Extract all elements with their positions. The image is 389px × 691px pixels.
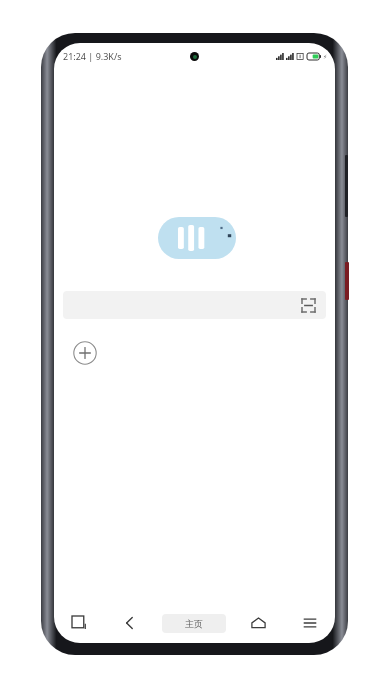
button[interactable]: Menu [284, 603, 335, 643]
button[interactable]: Add [73, 341, 97, 365]
staticText: 主页 [185, 618, 203, 629]
button[interactable]: Scan [299, 296, 317, 314]
staticText: ⚡ [323, 53, 328, 60]
button[interactable]: Tabs [54, 603, 104, 643]
button[interactable]: Scan [63, 291, 326, 319]
button[interactable]: Home [233, 603, 284, 643]
button[interactable]: 主页 [162, 614, 226, 633]
button[interactable]: Back [104, 603, 155, 643]
staticText: 21:24 | 9.3K/s [63, 50, 122, 62]
